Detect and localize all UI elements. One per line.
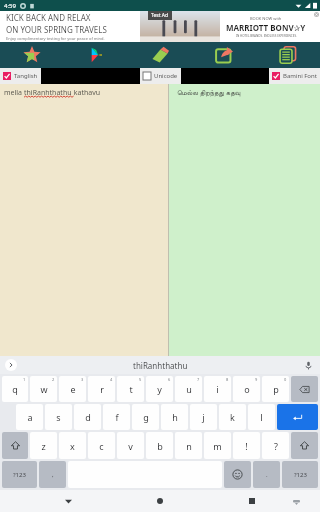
button[interactable]: மெல்ல திறந்தது கதவு — [169, 84, 320, 356]
staticText: மெல்ல திறந்தது கதவு — [177, 88, 241, 98]
staticText: i — [216, 383, 219, 395]
button[interactable]: h — [161, 404, 188, 430]
button[interactable]: Close ad — [314, 12, 319, 17]
button[interactable]: Hide keyboard — [290, 495, 302, 507]
button[interactable]: k — [219, 404, 246, 430]
button[interactable]: ?123 — [282, 461, 318, 488]
button[interactable]: l — [248, 404, 275, 430]
button[interactable]: a — [16, 404, 43, 430]
staticText: 6 — [168, 377, 171, 382]
button[interactable]: Emoji — [224, 461, 251, 488]
staticText: Test Ad — [151, 12, 169, 19]
staticText: f — [115, 411, 119, 423]
button[interactable]: z — [30, 432, 57, 459]
button[interactable]: KICK BACK AND RELAX — [0, 11, 320, 42]
staticText: m — [213, 440, 222, 452]
button[interactable]: t — [117, 376, 144, 402]
button[interactable]: f — [103, 404, 130, 430]
staticText: h — [172, 411, 178, 423]
button[interactable]: x — [59, 432, 86, 459]
staticText: ?123 — [294, 471, 307, 479]
staticText: IN HOTEL BRANDS. ENDLESS EXPERIENCES. — [236, 34, 297, 38]
staticText: k — [230, 411, 235, 423]
button[interactable]: d — [74, 404, 101, 430]
button[interactable]: Share — [192, 42, 256, 68]
staticText: MARRIOTT BONV✰Y — [226, 22, 306, 33]
button[interactable]: r — [88, 376, 115, 402]
staticText: j — [202, 411, 205, 423]
button[interactable]: c — [88, 432, 115, 459]
button[interactable]: Favourite — [0, 42, 64, 68]
button[interactable]: s — [45, 404, 72, 430]
staticText: w — [40, 383, 48, 395]
staticText: KICK BACK AND RELAX — [6, 12, 91, 23]
staticText: c — [99, 440, 104, 452]
button[interactable]: ?123 — [2, 461, 37, 488]
staticText: 8 — [226, 377, 229, 382]
button[interactable]: v — [117, 432, 144, 459]
staticText: 4:59 — [4, 2, 16, 10]
button[interactable]: b — [146, 432, 173, 459]
button[interactable]: Voice input — [302, 359, 314, 371]
staticText: l — [260, 411, 263, 423]
staticText: z — [41, 440, 46, 452]
staticText: Tanglish — [14, 72, 38, 80]
staticText: u — [186, 383, 192, 395]
button[interactable]: thiRanhthathu — [133, 360, 188, 371]
button[interactable]: g — [132, 404, 159, 430]
staticText: e — [70, 383, 76, 395]
button[interactable]: i — [204, 376, 231, 402]
staticText: d — [85, 411, 91, 423]
button[interactable]: More suggestions — [5, 359, 17, 371]
button[interactable]: Clear — [128, 42, 192, 68]
button[interactable]: p — [262, 376, 289, 402]
staticText: 0 — [284, 377, 287, 382]
staticText: v — [128, 440, 133, 452]
staticText: 1 — [23, 377, 26, 382]
button[interactable]: Shift — [2, 432, 28, 459]
button[interactable]: Play Store — [64, 42, 128, 68]
button[interactable]: ! — [233, 432, 260, 459]
button[interactable]: mella — [0, 84, 168, 356]
button[interactable]: Recent apps — [244, 493, 260, 509]
staticText: , — [52, 471, 54, 479]
button[interactable]: Bamini Font — [269, 68, 320, 84]
button[interactable]: Copy — [256, 42, 320, 68]
staticText: a — [27, 411, 33, 423]
staticText: 2 — [52, 377, 55, 382]
button[interactable]: , — [39, 461, 66, 488]
button[interactable]: Enter — [277, 404, 318, 430]
button[interactable]: j — [190, 404, 217, 430]
button[interactable]: y — [146, 376, 173, 402]
staticText: BOOK NOW with — [250, 16, 282, 21]
staticText: p — [273, 383, 279, 395]
staticText: 4 — [110, 377, 113, 382]
staticText: s — [56, 411, 61, 423]
staticText: o — [244, 383, 250, 395]
button[interactable]: Home — [152, 493, 168, 509]
staticText: 9 — [255, 377, 258, 382]
staticText: Bamini Font — [283, 72, 317, 80]
button[interactable]: o — [233, 376, 260, 402]
staticText: ? — [274, 440, 278, 452]
staticText: thiRanhthathu — [24, 88, 72, 98]
button[interactable]: Unicode — [140, 68, 181, 84]
staticText: 3 — [81, 377, 84, 382]
button[interactable]: Backspace — [291, 376, 318, 402]
staticText: . — [266, 471, 268, 479]
staticText: 7 — [197, 377, 200, 382]
button[interactable]: n — [175, 432, 202, 459]
button[interactable]: Back — [60, 493, 76, 509]
button[interactable]: m — [204, 432, 231, 459]
button[interactable]: q — [2, 376, 28, 402]
button[interactable]: e — [59, 376, 86, 402]
button[interactable]: Shift — [291, 432, 318, 459]
button[interactable]: ? — [262, 432, 289, 459]
staticText: ON YOUR SPRING TRAVELS — [6, 24, 107, 35]
staticText: n — [186, 440, 192, 452]
button[interactable]: Tanglish — [0, 68, 41, 84]
button[interactable]: u — [175, 376, 202, 402]
button[interactable]: w — [30, 376, 57, 402]
